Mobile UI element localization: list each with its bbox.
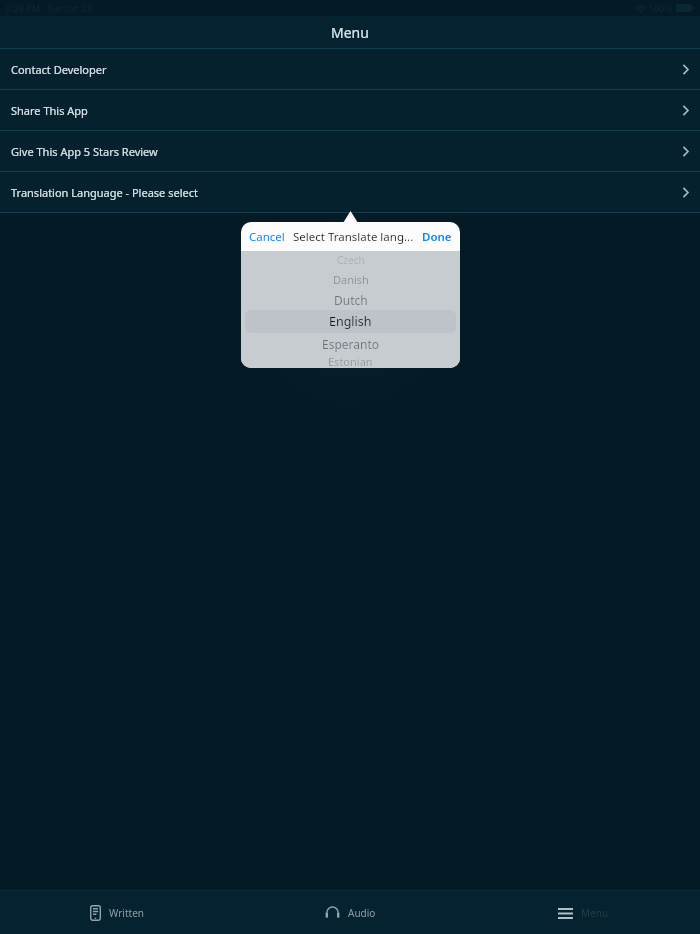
- staticText: Czech: [337, 253, 365, 267]
- button[interactable]: Translation Language - Please select: [0, 172, 700, 212]
- staticText: Menu: [581, 906, 609, 920]
- staticText: Share This App: [11, 103, 88, 118]
- staticText: Written: [109, 906, 144, 920]
- staticText: Audio: [348, 906, 376, 920]
- button[interactable]: Estonian: [241, 354, 460, 368]
- button[interactable]: Audio: [234, 891, 467, 934]
- button[interactable]: Contact Developer: [0, 49, 700, 89]
- staticText: Estonian: [328, 354, 373, 368]
- other: Audio: [325, 906, 340, 920]
- staticText: Give This App 5 Stars Review: [11, 144, 158, 159]
- button[interactable]: Cancel: [241, 224, 293, 250]
- button[interactable]: Give This App 5 Stars Review: [0, 131, 700, 171]
- staticText: Menu: [331, 23, 369, 42]
- button[interactable]: English: [245, 310, 456, 333]
- button[interactable]: Written: [0, 891, 234, 934]
- staticText: Done: [422, 229, 452, 245]
- button[interactable]: Menu: [467, 891, 700, 934]
- staticText: Contact Developer: [11, 62, 107, 77]
- staticText: Translation Language - Please select: [11, 185, 198, 200]
- staticText: 9:28 PM: [6, 2, 40, 14]
- button[interactable]: Dutch: [241, 289, 460, 310]
- staticText: Danish: [333, 272, 369, 287]
- staticText: Select Translate lang...: [293, 229, 414, 245]
- button[interactable]: Done: [414, 224, 460, 250]
- staticText: 100%: [649, 2, 673, 14]
- other: Written: [90, 905, 101, 921]
- staticText: Cancel: [249, 229, 285, 245]
- staticText: Esperanto: [322, 336, 380, 352]
- staticText: English: [329, 313, 372, 330]
- other: Menu: [558, 908, 573, 919]
- button[interactable]: Esperanto: [241, 333, 460, 354]
- staticText: Sun Jan 23: [47, 2, 92, 14]
- staticText: Dutch: [334, 292, 368, 308]
- button[interactable]: Danish: [241, 269, 460, 289]
- button[interactable]: Share This App: [0, 90, 700, 130]
